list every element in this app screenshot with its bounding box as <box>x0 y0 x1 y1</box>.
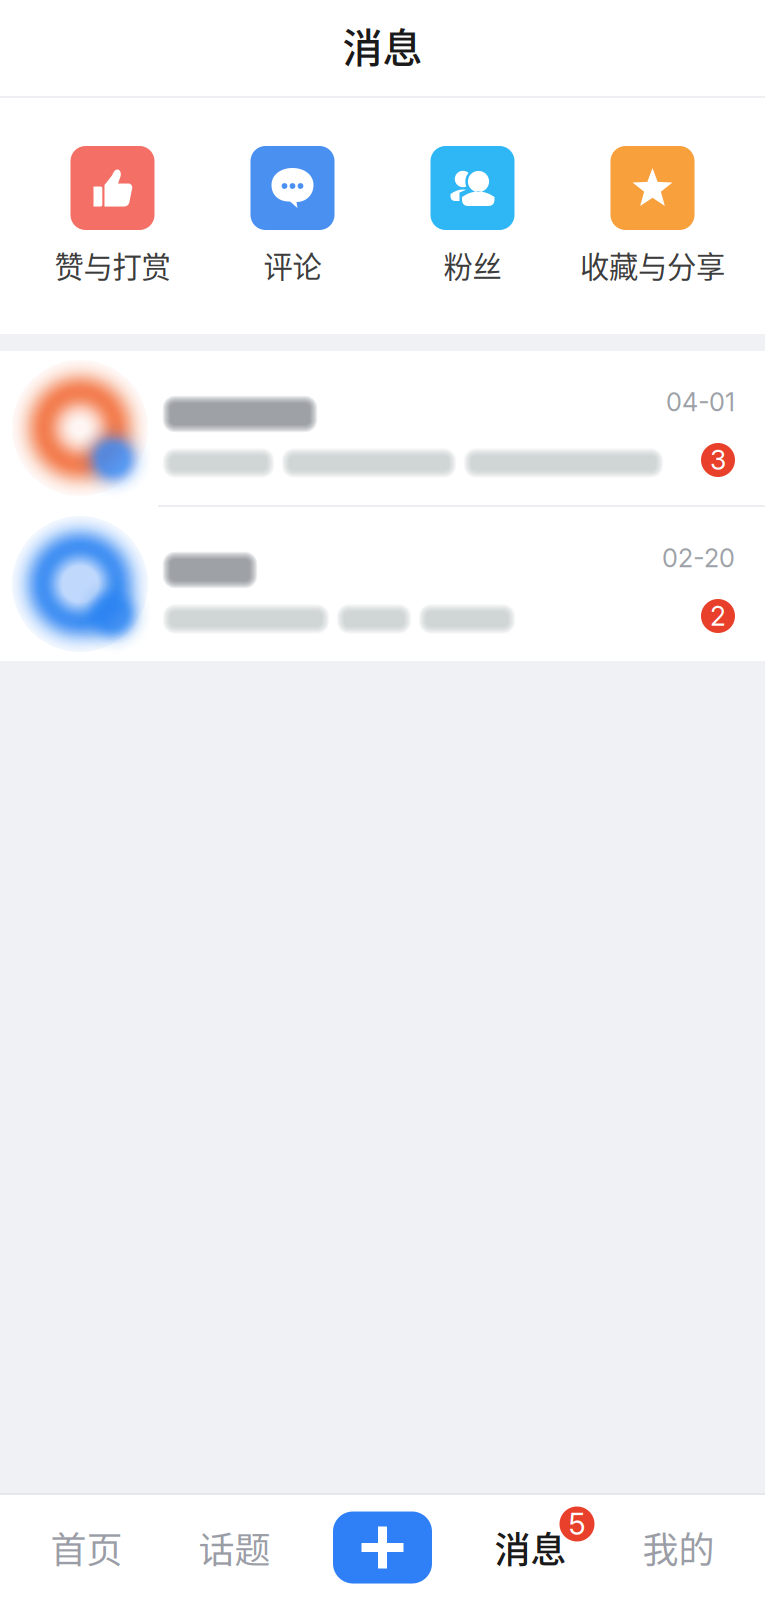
staticText: 我的 <box>642 1521 714 1573</box>
button[interactable]: 04-01 <box>0 351 765 507</box>
staticText: 收藏与分享 <box>580 244 725 286</box>
button[interactable]: 评论 <box>202 146 382 286</box>
button[interactable]: 赞与打赏 <box>22 146 202 286</box>
staticText: 04-01 <box>666 387 735 417</box>
staticText: 评论 <box>263 244 321 286</box>
staticText: 赞与打赏 <box>54 244 170 286</box>
button[interactable]: 消息 <box>456 1495 604 1600</box>
button[interactable]: 首页 <box>12 1495 160 1600</box>
button[interactable]: New post <box>308 1495 456 1600</box>
button[interactable]: 话题 <box>160 1495 308 1600</box>
staticText: 5 <box>568 1506 585 1542</box>
button[interactable]: 收藏与分享 <box>562 146 742 286</box>
staticText: 粉丝 <box>443 244 501 286</box>
staticText: 消息 <box>494 1521 566 1573</box>
button[interactable]: 我的 <box>604 1495 752 1600</box>
staticText: 02-20 <box>662 543 735 573</box>
staticText: 消息 <box>342 16 422 74</box>
staticText: 3 <box>710 444 726 476</box>
button[interactable]: 02-20 <box>0 507 765 661</box>
staticText: 话题 <box>198 1521 270 1573</box>
staticText: 首页 <box>50 1521 122 1573</box>
staticText: 2 <box>710 600 726 632</box>
button[interactable]: 粉丝 <box>382 146 562 286</box>
